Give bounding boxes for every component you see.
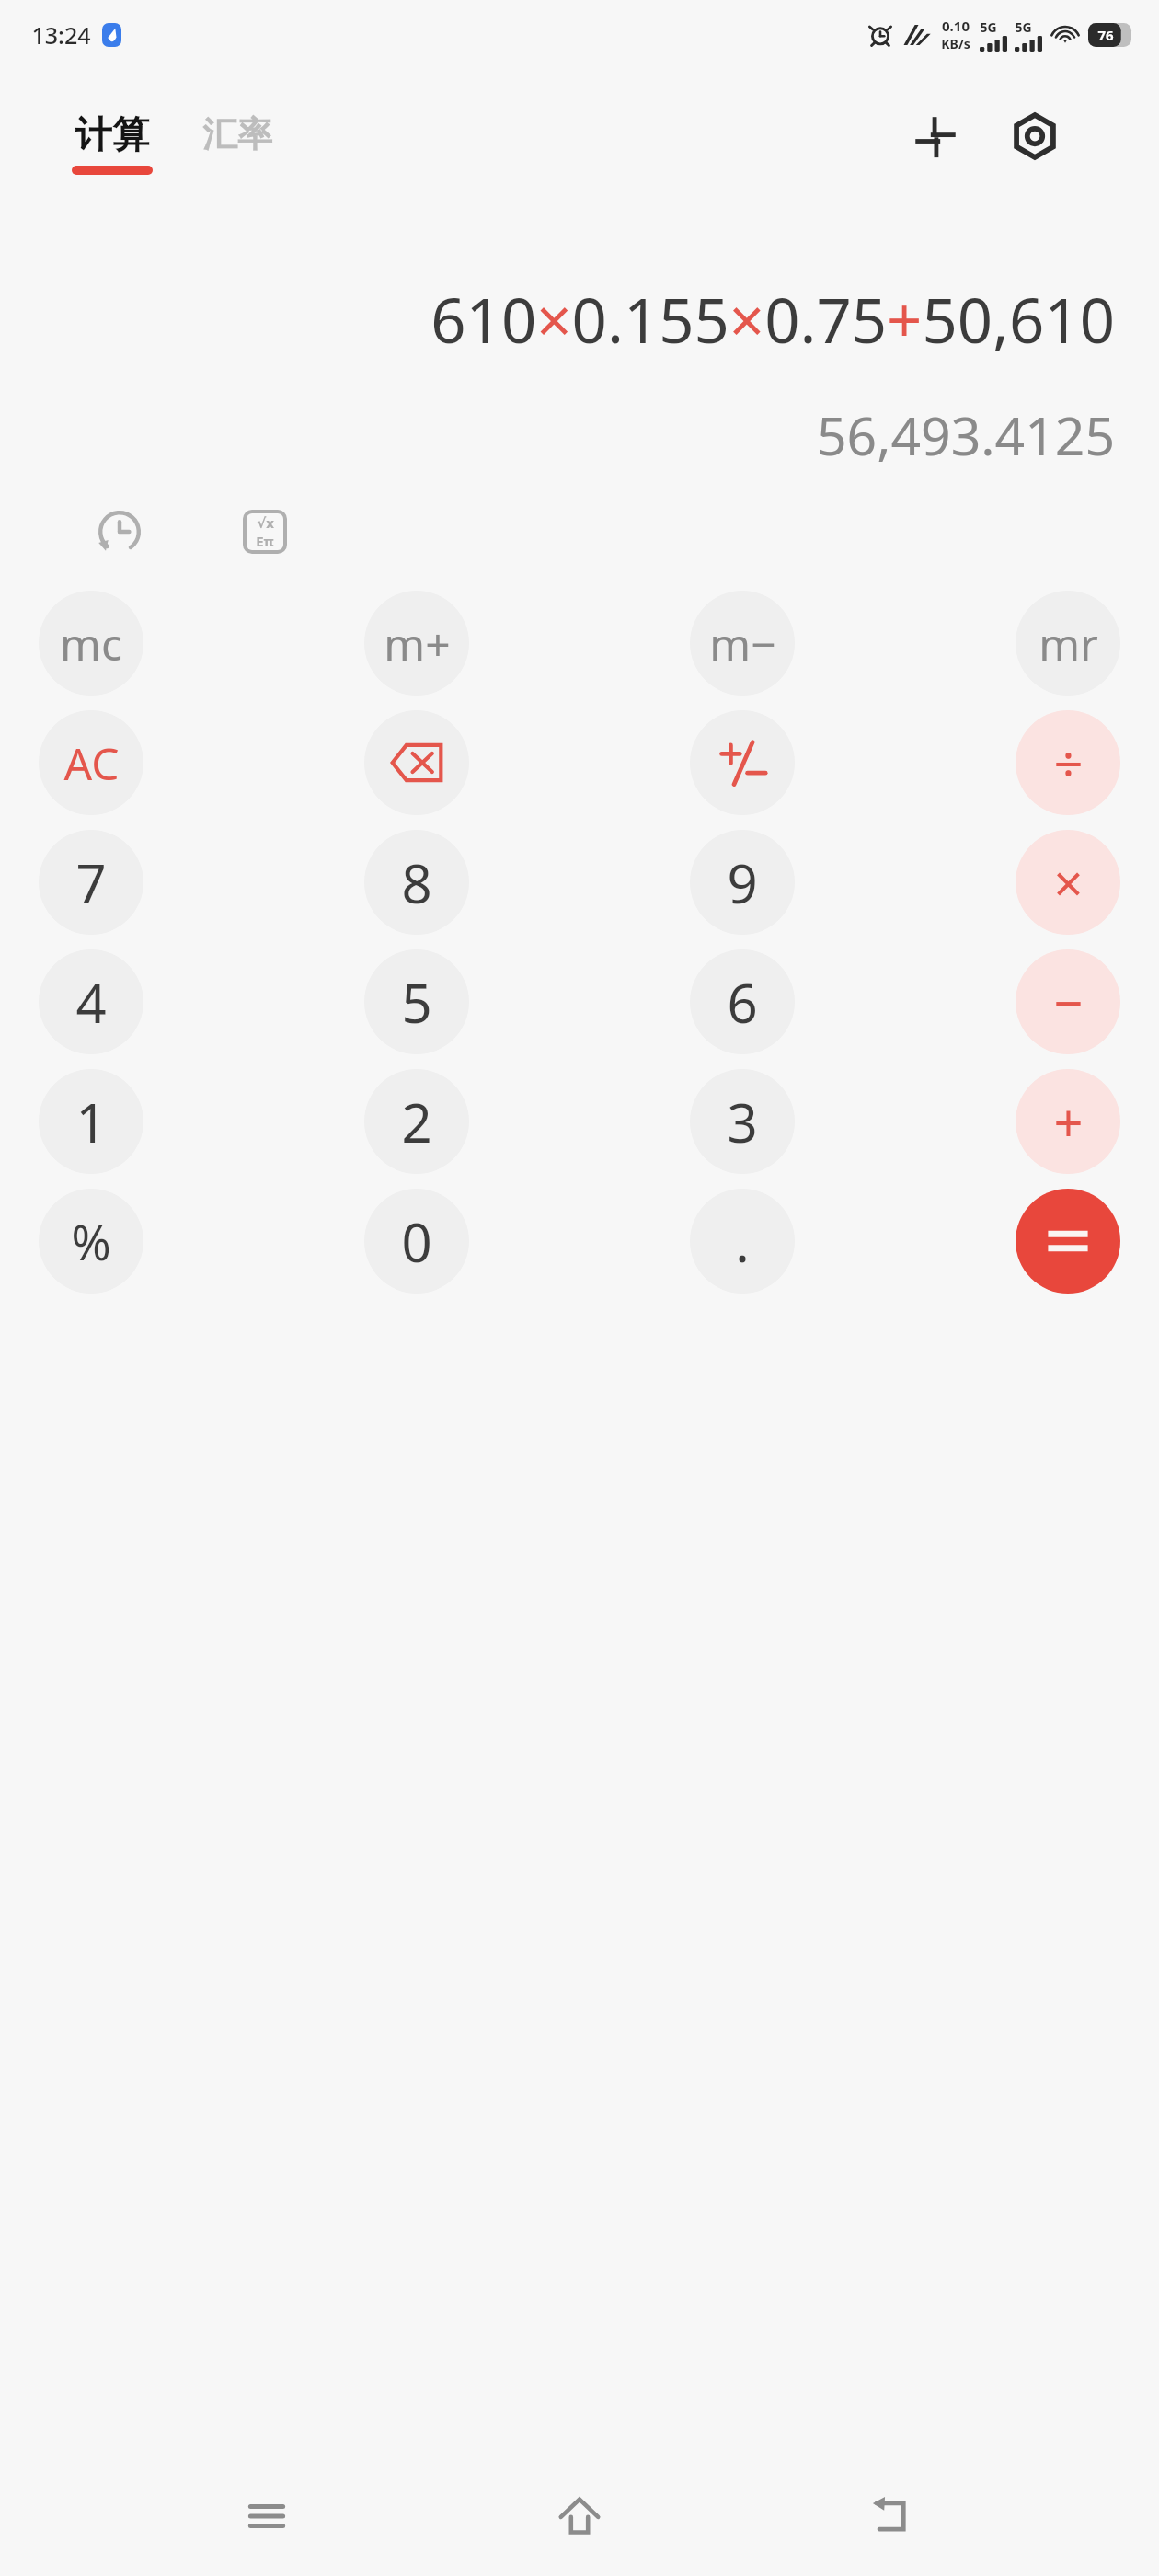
staticText: 9 <box>727 846 758 919</box>
button[interactable]: × <box>1016 830 1120 935</box>
staticText: mr <box>1039 614 1098 673</box>
staticText: − <box>1053 967 1084 1037</box>
button[interactable]: Settings <box>998 99 1072 173</box>
button[interactable]: mc <box>39 591 143 696</box>
staticText: Eπ <box>256 532 274 550</box>
button[interactable]: % <box>39 1189 143 1294</box>
button[interactable]: 汇率 <box>202 112 272 174</box>
button[interactable]: Delete <box>364 710 469 815</box>
button[interactable]: Scientific <box>226 493 304 570</box>
button[interactable]: Equals <box>1016 1189 1120 1294</box>
button[interactable]: Floating window <box>899 99 972 173</box>
button[interactable]: . <box>690 1189 795 1294</box>
staticText: 2 <box>401 1086 432 1158</box>
staticText: 5 <box>401 966 432 1039</box>
staticText: 0 <box>401 1205 432 1278</box>
staticText: mc <box>60 614 122 673</box>
staticText: 6 <box>727 966 758 1039</box>
button[interactable]: ÷ <box>1016 710 1120 815</box>
staticText: m+ <box>384 614 451 673</box>
staticText: 汇率 <box>202 112 272 156</box>
staticText: m− <box>709 614 776 673</box>
button[interactable]: 9 <box>690 830 795 935</box>
button[interactable]: Recents <box>221 2470 313 2562</box>
staticText: . <box>735 1205 750 1278</box>
staticText: 56,493.4125 <box>817 399 1115 471</box>
staticText: 5G <box>1015 18 1032 36</box>
staticText: 610×0.155×0.75+50,610 <box>430 277 1115 361</box>
button[interactable]: 0 <box>364 1189 469 1294</box>
button[interactable]: History <box>81 493 158 570</box>
button[interactable]: m+ <box>364 591 469 696</box>
staticText: √x <box>257 513 274 532</box>
staticText: 3 <box>727 1086 758 1158</box>
staticText: 计算 <box>75 111 149 157</box>
staticText: 8 <box>401 846 432 919</box>
staticText: ÷ <box>1053 728 1084 798</box>
button[interactable]: 5 <box>364 949 469 1054</box>
staticText: 13:24 <box>31 19 91 51</box>
button[interactable]: Plus minus <box>690 710 795 815</box>
button[interactable]: − <box>1016 949 1120 1054</box>
staticText: 5G <box>980 18 997 36</box>
staticText: 4 <box>75 966 107 1039</box>
staticText: + <box>1053 1087 1084 1156</box>
button[interactable]: m− <box>690 591 795 696</box>
button[interactable]: mr <box>1016 591 1120 696</box>
staticText: % <box>71 1209 111 1274</box>
button[interactable]: 2 <box>364 1069 469 1174</box>
staticText: 7 <box>75 846 107 919</box>
staticText: 76 <box>1097 26 1114 44</box>
button[interactable]: 1 <box>39 1069 143 1174</box>
button[interactable]: Home <box>534 2470 625 2562</box>
button[interactable]: 6 <box>690 949 795 1054</box>
staticText: 1 <box>75 1086 107 1158</box>
staticText: AC <box>63 733 120 793</box>
staticText: 0.10 <box>942 17 970 35</box>
button[interactable]: 8 <box>364 830 469 935</box>
button[interactable]: 3 <box>690 1069 795 1174</box>
button[interactable]: + <box>1016 1069 1120 1174</box>
button[interactable]: 7 <box>39 830 143 935</box>
button[interactable]: Back <box>846 2470 938 2562</box>
staticText: × <box>1053 847 1084 917</box>
button[interactable]: AC <box>39 710 143 815</box>
staticText: KB/s <box>941 35 970 52</box>
button[interactable]: 计算 <box>72 111 153 175</box>
button[interactable]: 4 <box>39 949 143 1054</box>
